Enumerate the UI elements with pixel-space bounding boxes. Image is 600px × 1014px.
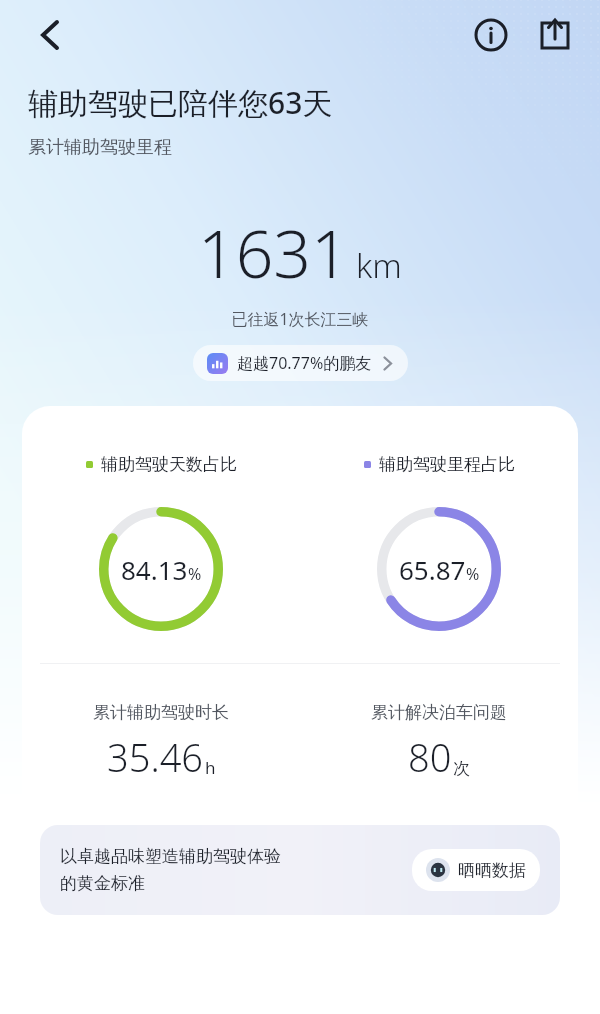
staticText: % — [188, 563, 202, 585]
staticText: 辅助驾驶天数占比 — [101, 454, 237, 475]
staticText: 超越70.77%的鹏友 — [237, 352, 372, 374]
button[interactable]: 晒晒数据 — [412, 849, 540, 891]
staticText: 1631 — [198, 207, 349, 297]
button[interactable]: Share — [532, 12, 578, 58]
staticText: 晒晒数据 — [458, 860, 526, 881]
button[interactable]: Back — [28, 13, 72, 57]
staticText: 已往返1次长江三峡 — [0, 308, 600, 330]
staticText: 以卓越品味塑造辅助驾驶体验 的黄金标准 — [60, 846, 402, 894]
staticText: 辅助驾驶已陪伴您63天 — [28, 82, 333, 123]
staticText: 辅助驾驶里程占比 — [379, 454, 515, 475]
button[interactable]: 超越70.77%的鹏友 — [193, 345, 408, 381]
staticText: % — [466, 563, 480, 585]
staticText: 84.13 — [121, 552, 188, 587]
staticText: h — [205, 756, 216, 779]
staticText: 累计辅助驾驶时长 — [93, 702, 229, 723]
staticText: 80 — [408, 731, 452, 783]
button[interactable]: Info — [468, 12, 514, 58]
staticText: 累计解决泊车问题 — [371, 702, 507, 723]
staticText: 次 — [453, 758, 470, 779]
staticText: 65.87 — [399, 552, 466, 587]
staticText: 累计辅助驾驶里程 — [28, 136, 172, 159]
staticText: 35.46 — [107, 731, 204, 783]
staticText: km — [356, 243, 402, 288]
